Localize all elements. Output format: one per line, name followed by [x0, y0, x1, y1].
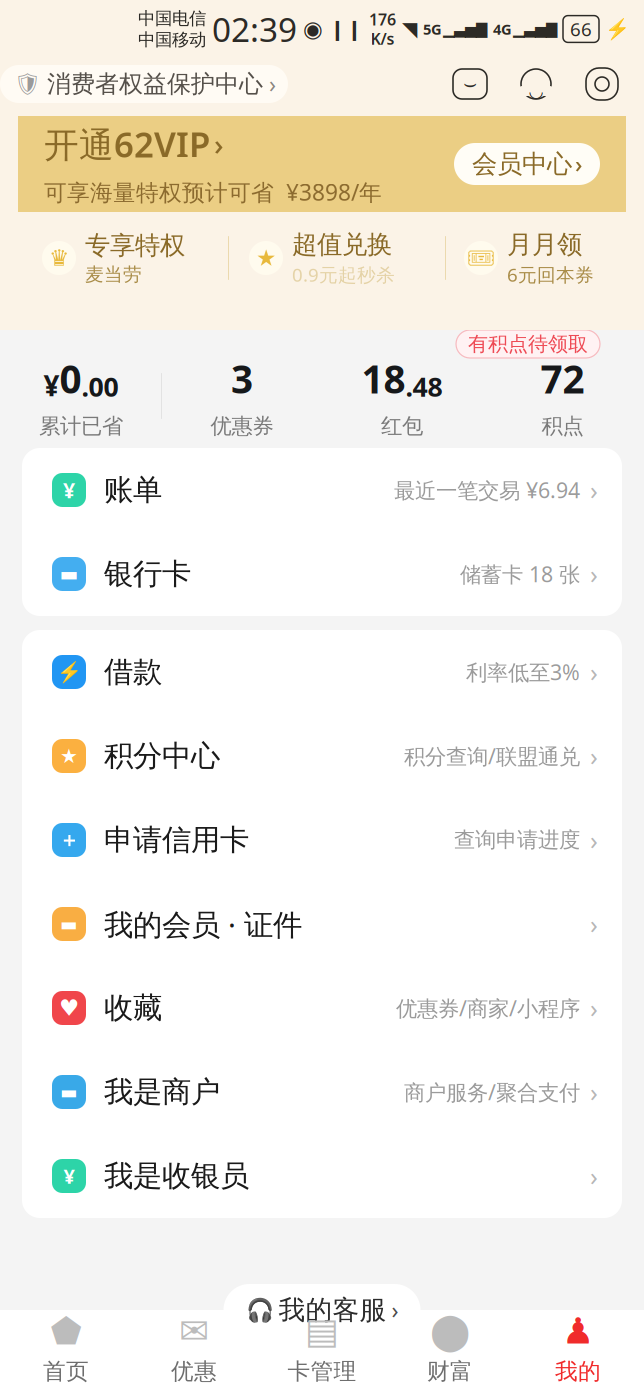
- staticText: 超值兑换: [292, 229, 392, 260]
- staticText: ›: [590, 1159, 598, 1193]
- button[interactable]: ▬: [22, 882, 622, 966]
- staticText: 0.9元起秒杀: [292, 262, 395, 287]
- staticText: 3: [231, 353, 253, 404]
- staticText: ♥: [59, 995, 79, 1021]
- button[interactable]: 72: [540, 353, 584, 439]
- staticText: ✉: [179, 1311, 209, 1351]
- staticText: 🎟: [466, 245, 495, 271]
- staticText: ¥: [63, 476, 75, 504]
- staticText: ¥: [63, 1163, 74, 1189]
- staticText: 消费者权益保护中心: [47, 69, 263, 99]
- button[interactable]: 🎧: [223, 1284, 420, 1336]
- staticText: ›: [391, 1295, 398, 1325]
- staticText: 累计已省: [39, 413, 123, 439]
- staticText: 4G: [493, 19, 512, 39]
- button[interactable]: ⚡: [22, 630, 622, 714]
- staticText: ⬤: [430, 1311, 470, 1351]
- staticText: 商户服务/聚合支付: [404, 1078, 580, 1106]
- staticText: 5G: [423, 19, 442, 39]
- button[interactable]: 开通62VIP: [18, 116, 626, 212]
- button[interactable]: ⬟: [2, 1312, 130, 1384]
- staticText: ❙❙: [329, 18, 363, 40]
- staticText: ◡: [528, 81, 543, 101]
- staticText: ◥: [402, 18, 417, 40]
- button[interactable]: 🎟: [464, 229, 594, 287]
- staticText: ★: [256, 245, 276, 271]
- staticText: ▬: [60, 1081, 78, 1103]
- staticText: 我是收银员: [104, 1158, 249, 1194]
- staticText: ›: [590, 739, 598, 773]
- staticText: 有积点待领取: [468, 332, 588, 356]
- staticText: 72: [540, 353, 584, 404]
- staticText: 收藏: [104, 990, 162, 1026]
- staticText: ⚡: [605, 18, 630, 40]
- staticText: ★: [60, 745, 78, 767]
- staticText: .00: [81, 369, 118, 404]
- staticText: 6元回本券: [507, 262, 594, 287]
- button[interactable]: ♛: [42, 230, 185, 286]
- staticText: 0: [59, 353, 81, 404]
- staticText: ⬟: [50, 1311, 81, 1351]
- staticText: 积点: [541, 413, 583, 439]
- staticText: 可享海量特权预计可省 ¥3898/年: [44, 177, 382, 207]
- button[interactable]: ♥: [22, 966, 622, 1050]
- staticText: ＋: [59, 828, 79, 852]
- staticText: 申请信用卡: [104, 822, 249, 858]
- button[interactable]: ★: [22, 714, 622, 798]
- staticText: 会员中心: [472, 148, 572, 179]
- staticText: 我的会员 · 证件: [104, 904, 302, 943]
- staticText: 专享特权: [85, 230, 185, 261]
- staticText: 优惠券/商家/小程序: [396, 994, 580, 1022]
- button[interactable]: 客服: [516, 64, 556, 104]
- staticText: 🎧: [245, 1297, 273, 1323]
- staticText: 财富: [427, 1357, 473, 1385]
- staticText: .48: [405, 369, 442, 404]
- button[interactable]: ⬤: [386, 1312, 514, 1384]
- staticText: ♟: [562, 1311, 594, 1351]
- staticText: ▬: [60, 913, 78, 935]
- staticText: 优惠券: [210, 413, 273, 439]
- staticText: 积分查询/联盟通兑: [404, 742, 580, 770]
- staticText: ♛: [49, 245, 69, 271]
- button[interactable]: ▤: [258, 1312, 386, 1384]
- staticText: 中国电信: [138, 8, 206, 29]
- staticText: 66: [570, 17, 592, 41]
- staticText: ›: [590, 557, 598, 591]
- button[interactable]: ¥: [39, 353, 123, 439]
- staticText: 积分中心: [104, 738, 220, 774]
- staticText: 开通62VIP: [44, 121, 210, 167]
- button[interactable]: ¥: [22, 1134, 622, 1218]
- staticText: ›: [590, 907, 598, 941]
- button[interactable]: 设置: [582, 64, 622, 104]
- staticText: ›: [590, 991, 598, 1025]
- staticText: 账单: [104, 472, 162, 508]
- staticText: 查询申请进度: [454, 827, 580, 853]
- button[interactable]: ✉: [130, 1312, 258, 1384]
- staticText: 02:39: [212, 7, 297, 51]
- button[interactable]: 消息: [450, 64, 490, 104]
- staticText: ›: [590, 473, 598, 507]
- staticText: ›: [590, 1075, 598, 1109]
- button[interactable]: ＋: [22, 798, 622, 882]
- staticText: 卡管理: [287, 1357, 356, 1385]
- staticText: 中国移动: [138, 29, 206, 50]
- staticText: 我的客服: [278, 1294, 386, 1326]
- staticText: 176: [369, 9, 396, 30]
- staticText: 麦当劳: [85, 263, 142, 286]
- button[interactable]: 3: [210, 353, 273, 439]
- button[interactable]: ▬: [22, 532, 622, 616]
- staticText: 首页: [43, 1357, 89, 1385]
- staticText: 18: [361, 353, 405, 404]
- button[interactable]: ▬: [22, 1050, 622, 1134]
- button[interactable]: 🛡: [0, 65, 288, 103]
- button[interactable]: ★: [249, 229, 395, 287]
- staticText: 红包: [381, 413, 423, 439]
- staticText: ›: [575, 149, 582, 179]
- staticText: ›: [590, 823, 598, 857]
- button[interactable]: ♟: [514, 1312, 642, 1384]
- button[interactable]: ¥: [22, 448, 622, 532]
- button[interactable]: 18: [361, 353, 442, 439]
- staticText: 我是商户: [104, 1074, 220, 1110]
- staticText: 优惠: [171, 1357, 217, 1385]
- staticText: ¥: [43, 367, 59, 404]
